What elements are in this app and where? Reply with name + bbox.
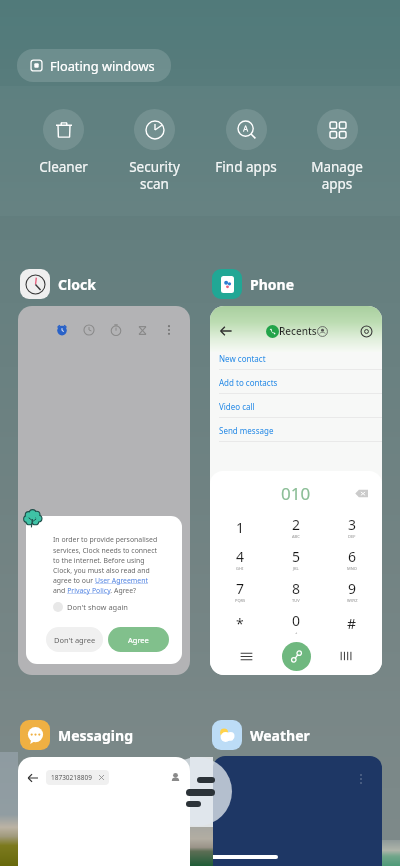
staticText: 2 — [292, 515, 301, 534]
button[interactable]: 9 — [326, 575, 378, 607]
staticText: 18730218809 — [51, 773, 92, 782]
staticText: Floating windows — [50, 57, 155, 74]
staticText: 3 — [348, 515, 357, 534]
staticText: Find apps — [215, 158, 277, 176]
button[interactable]: Send message — [210, 418, 382, 442]
button[interactable]: 4 — [214, 543, 266, 575]
staticText: 6 — [348, 547, 357, 566]
button[interactable]: More — [213, 756, 382, 866]
staticText: Don't agree — [54, 635, 96, 645]
staticText: Phone — [250, 275, 295, 294]
staticText: PQRS — [235, 598, 246, 603]
button[interactable]: Security scan — [112, 109, 196, 193]
button[interactable]: Clock — [20, 269, 96, 299]
staticText: ABC — [292, 534, 300, 539]
staticText: 5 — [292, 547, 301, 566]
staticText: 0 — [292, 611, 301, 630]
staticText: 7 — [236, 579, 245, 598]
staticText: Messaging — [58, 726, 133, 745]
staticText: Clock — [58, 275, 96, 294]
button[interactable]: More options — [18, 306, 190, 675]
button[interactable]: Agree — [108, 627, 169, 652]
staticText: * — [236, 614, 244, 633]
other: Settings — [360, 325, 373, 338]
other: Back — [27, 772, 39, 784]
button[interactable]: Keypad — [331, 641, 361, 671]
other: Backspace — [355, 487, 368, 500]
button[interactable]: Cleaner — [21, 109, 105, 176]
staticText: 9 — [348, 579, 357, 598]
button[interactable]: Manage apps — [295, 109, 379, 193]
staticText: Add to contacts — [219, 377, 278, 388]
staticText: Weather — [250, 726, 310, 745]
button[interactable]: 2 — [270, 511, 322, 543]
staticText: 4 — [236, 547, 245, 566]
staticText: TUV — [292, 598, 300, 603]
staticText: Security scan — [129, 158, 180, 193]
staticText: New contact — [219, 353, 266, 364]
staticText: # — [347, 614, 357, 633]
button[interactable]: Find apps — [204, 109, 288, 176]
button[interactable]: * — [214, 607, 266, 639]
staticText: JKL — [293, 566, 299, 571]
button[interactable]: Call log — [231, 641, 261, 671]
button[interactable]: 1 — [214, 511, 266, 543]
button[interactable]: # — [326, 607, 378, 639]
staticText: Recents — [279, 324, 317, 338]
button[interactable]: Add to contacts — [210, 370, 382, 394]
button[interactable]: Messaging — [20, 720, 133, 750]
button[interactable]: 5 — [270, 543, 322, 575]
button[interactable]: 6 — [326, 543, 378, 575]
other: Account — [317, 326, 328, 337]
button[interactable]: Video call — [210, 394, 382, 418]
staticText: 1 — [236, 518, 245, 537]
staticText: Cleaner — [39, 158, 88, 176]
staticText: Send message — [219, 425, 274, 436]
staticText: Manage apps — [311, 158, 363, 193]
button[interactable]: 8 — [270, 575, 322, 607]
button[interactable]: Don't agree — [46, 627, 103, 652]
staticText: Don't show again — [67, 602, 128, 612]
staticText: WXYZ — [347, 598, 358, 603]
button[interactable]: Back — [210, 306, 382, 675]
other: Contacts — [170, 772, 181, 783]
button[interactable]: 0 — [270, 607, 322, 639]
button[interactable]: 7 — [214, 575, 266, 607]
button[interactable]: Back — [18, 757, 190, 866]
button[interactable]: 3 — [326, 511, 378, 543]
staticText: Video call — [219, 401, 255, 412]
staticText: DEF — [348, 534, 356, 539]
staticText: Agree — [128, 635, 149, 645]
staticText: MNO — [347, 566, 357, 571]
other: Back — [219, 324, 233, 338]
button[interactable]: Weather — [212, 720, 310, 750]
button[interactable]: Call — [282, 642, 311, 671]
button[interactable]: Phone — [212, 269, 295, 299]
staticText: 8 — [292, 579, 301, 598]
staticText: 010 — [281, 482, 311, 505]
staticText: + — [295, 630, 298, 635]
button[interactable]: New contact — [210, 346, 382, 370]
staticText: GHI — [236, 566, 244, 571]
staticText: In order to provide personalised service… — [53, 535, 162, 595]
other: More options — [163, 324, 175, 336]
button[interactable]: Floating windows — [17, 49, 171, 82]
other: More — [356, 774, 366, 784]
